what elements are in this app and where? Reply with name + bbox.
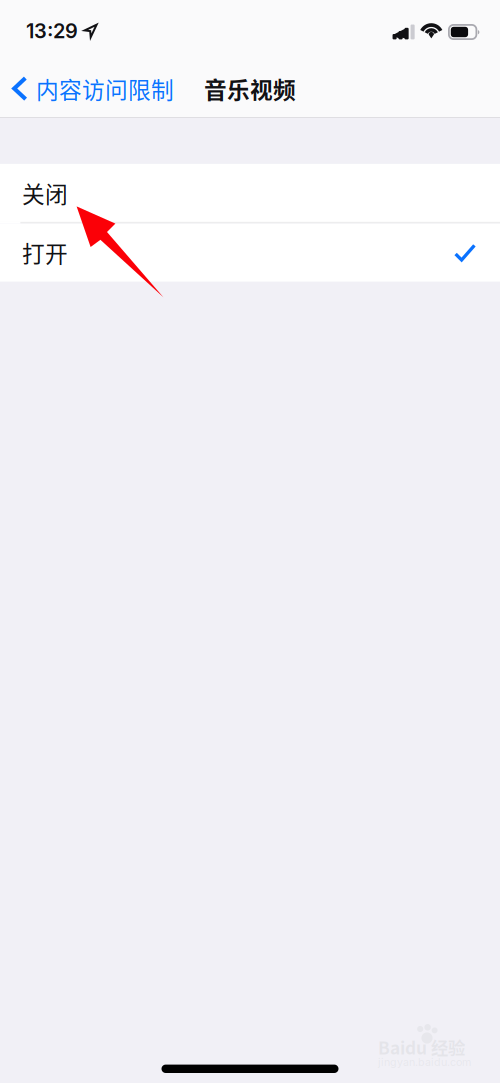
staticText: Baidu 经验 xyxy=(378,1034,465,1060)
staticText: 打开 xyxy=(22,236,68,269)
staticText: jingyan.baidu.com xyxy=(378,1055,471,1068)
button[interactable]: 内容访问限制 xyxy=(0,60,184,116)
staticText: 13:29 xyxy=(26,19,78,43)
button[interactable]: 关闭 xyxy=(0,164,500,222)
button[interactable]: 打开 xyxy=(0,224,500,282)
staticText: 关闭 xyxy=(22,176,68,209)
staticText: 内容访问限制 xyxy=(36,72,174,105)
staticText: 音乐视频 xyxy=(204,72,296,105)
